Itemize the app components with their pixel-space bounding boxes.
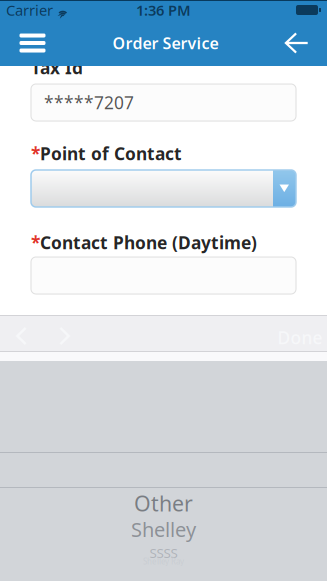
staticText: 1:36 PM (136, 0, 191, 20)
staticText: *****7207 (44, 91, 134, 114)
staticText: Shelley Ray (143, 556, 184, 567)
staticText: * (31, 142, 40, 165)
staticText: SSSS (149, 544, 177, 562)
staticText: Other (134, 489, 193, 517)
staticText: Contact Phone (Daytime) (40, 231, 257, 254)
staticText: Order Service (112, 32, 218, 54)
staticText: Carrier (6, 0, 53, 20)
staticText: Tax Id (31, 56, 83, 79)
button[interactable]: Back (266, 20, 327, 66)
staticText: * (31, 231, 40, 254)
staticText: Point of Contact (40, 142, 182, 165)
button[interactable]: Menu (0, 20, 65, 66)
staticText: Shelley (131, 516, 196, 543)
